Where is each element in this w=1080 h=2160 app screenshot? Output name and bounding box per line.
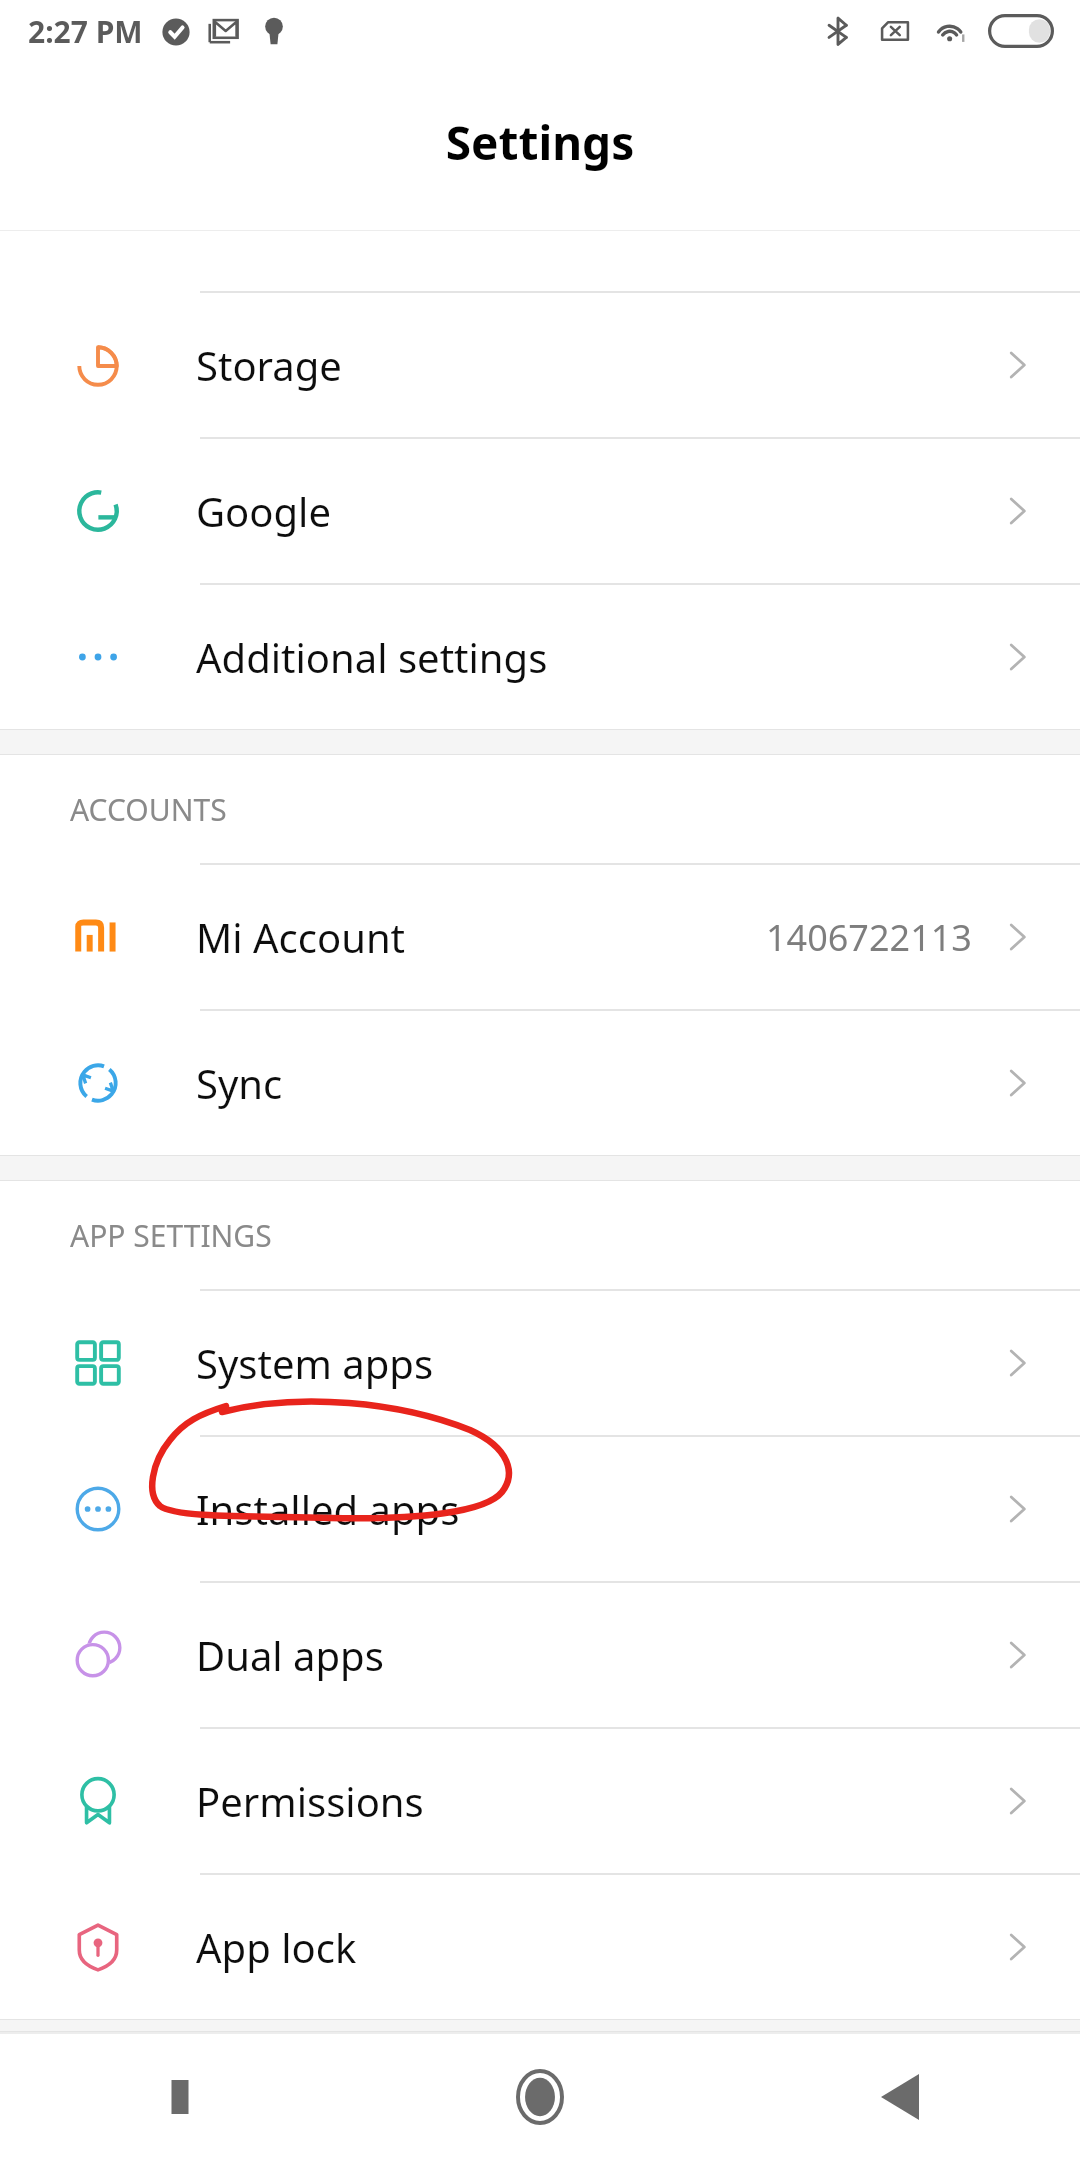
button[interactable]: Mi Account (0, 865, 1080, 1009)
staticText: Dual apps (196, 1628, 384, 1682)
button[interactable]: System apps (0, 1291, 1080, 1435)
staticText: APP SETTINGS (70, 1215, 272, 1256)
button[interactable]: Permissions (0, 1729, 1080, 1873)
staticText: 2:27 PM (28, 11, 143, 52)
button[interactable]: Google (0, 439, 1080, 583)
staticText: Sync (196, 1056, 283, 1110)
button[interactable]: Dual apps (0, 1583, 1080, 1727)
button[interactable]: Storage (0, 293, 1080, 437)
staticText: ACCOUNTS (70, 789, 227, 830)
button[interactable]: Installed apps (0, 1437, 1080, 1581)
staticText: Mi Account (196, 910, 406, 964)
staticText: App lock (196, 1920, 357, 1974)
button[interactable]: App lock (0, 1875, 1080, 2019)
button[interactable]: Recent apps (0, 2034, 360, 2160)
staticText: System apps (196, 1336, 434, 1390)
staticText: Additional settings (196, 630, 548, 684)
staticText: Permissions (196, 1774, 424, 1828)
button[interactable]: Additional settings (0, 585, 1080, 729)
staticText: Settings (0, 111, 1080, 174)
button[interactable]: Sync (0, 1011, 1080, 1155)
staticText: Google (196, 484, 331, 538)
button[interactable]: Home (360, 2034, 720, 2160)
staticText: Storage (196, 338, 342, 392)
staticText: 1406722113 (766, 913, 972, 962)
button[interactable]: Back (720, 2034, 1080, 2160)
staticText: Installed apps (196, 1482, 460, 1536)
